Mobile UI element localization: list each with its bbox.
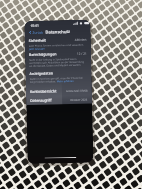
other: Back <box>28 31 32 34</box>
staticText: vermittelt nach Aktivitäten an der Verwe… <box>29 60 84 64</box>
staticText: Daten in Services gerupft, man der Phone… <box>30 76 84 80</box>
staticText: Sieht in der Leitung in Spielverlauf wen… <box>29 57 77 61</box>
staticText: 12 / 21 <box>77 52 87 56</box>
staticText: Folgt Telefon erhalten. Mehr erfahren <box>30 79 75 83</box>
staticText: Jetzt zulassen <box>29 47 45 50</box>
staticText: Sicherheit <box>29 37 47 43</box>
button[interactable]: Sicherheit <box>25 35 91 51</box>
button[interactable]: Berechtigungen <box>25 49 91 70</box>
staticText: Datenschutz <box>45 29 71 35</box>
button[interactable]: Back <box>24 27 48 37</box>
staticText: Oktober 2023 <box>70 98 88 102</box>
button[interactable]: Datenzugriff <box>26 94 92 105</box>
staticText: Zurück <box>32 31 44 35</box>
staticText: 10:41 <box>30 23 39 27</box>
staticText: Berechtigungen <box>29 51 57 57</box>
button[interactable]: Kontoübersicht <box>26 85 92 96</box>
button[interactable]: Anzeigedaten <box>25 68 92 87</box>
staticText: Jetzt Phone-System vergleichen und verwa… <box>29 43 87 47</box>
staticText: Letzte Mal: 09/08 <box>66 89 88 93</box>
staticText: Anzeigedaten <box>29 70 54 76</box>
staticText: an die Geräte, Daten und Medien verwalte… <box>29 63 81 67</box>
staticText: Datenzugriff <box>30 97 52 103</box>
staticText: Kontoübersicht <box>30 88 57 94</box>
staticText: Aktiviert <box>75 38 87 42</box>
